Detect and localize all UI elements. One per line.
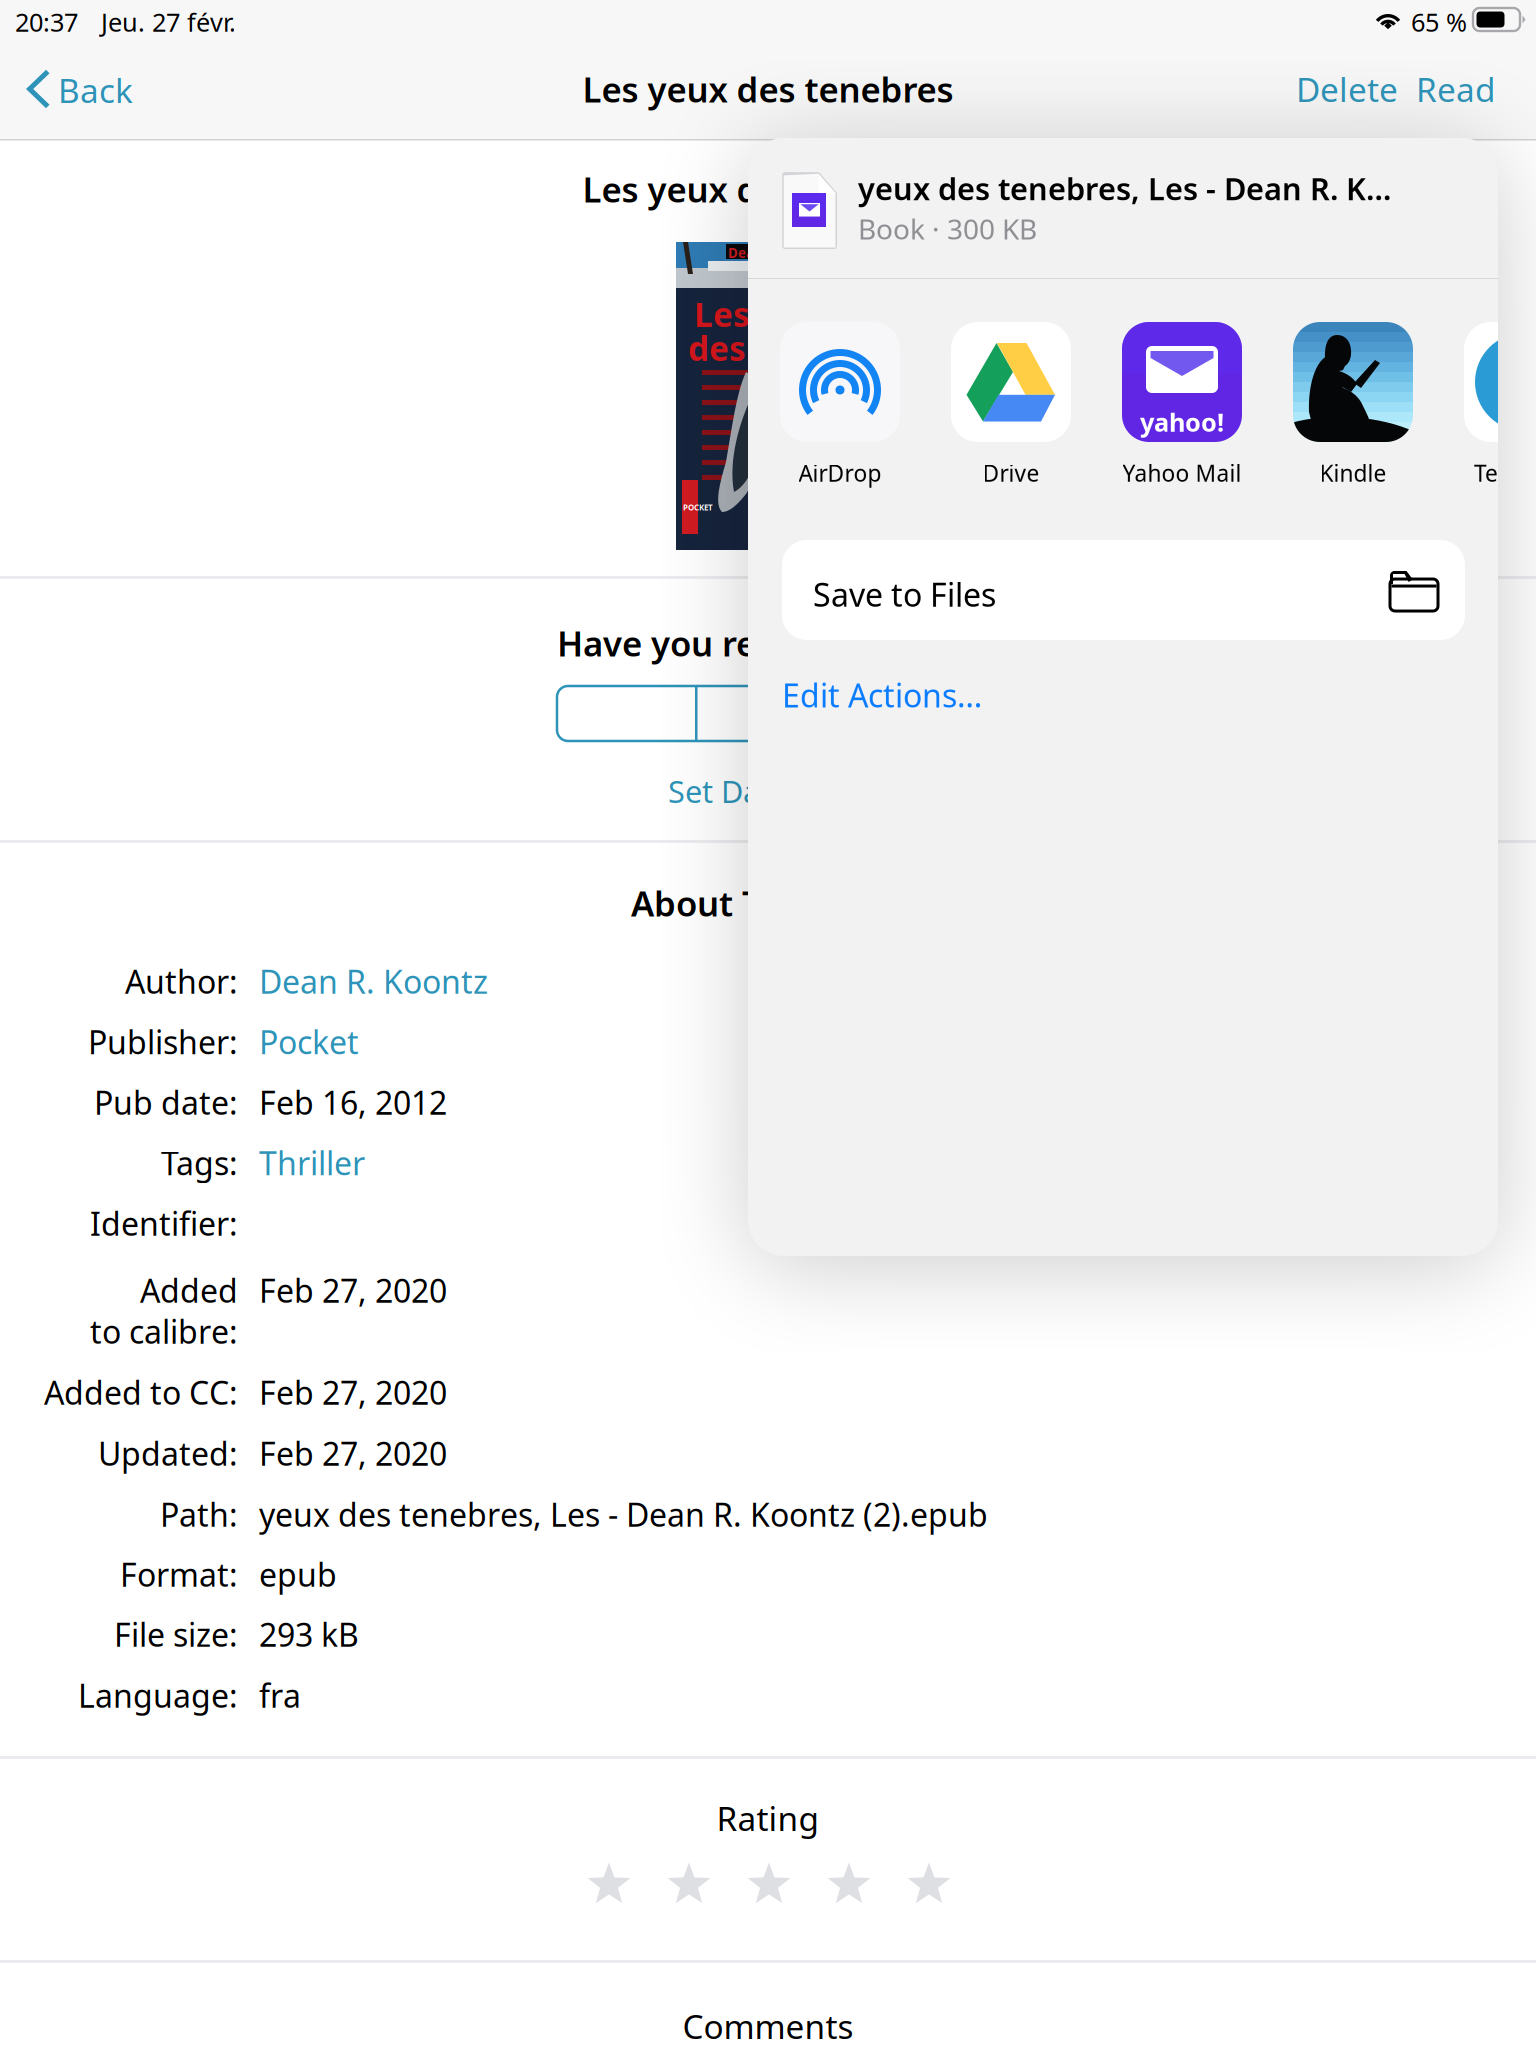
staticText: Updated:: [98, 1432, 238, 1474]
staticText: 65 %: [1411, 5, 1467, 39]
staticText: Comments: [682, 2004, 853, 2048]
staticText: Have you read this book?: [557, 620, 979, 666]
button[interactable]: Telegram: [1464, 322, 1536, 494]
button[interactable]: [557, 686, 695, 741]
button[interactable]: Save to Files: [782, 540, 1465, 640]
staticText: 20:37: [15, 5, 78, 39]
staticText: Path:: [160, 1493, 238, 1535]
staticText: Edit Actions…: [782, 674, 982, 716]
staticText: yeux des tenebres, Les - Dean R. K…: [858, 168, 1391, 209]
staticText: Tags:: [161, 1141, 238, 1184]
staticText: Identifier:: [90, 1202, 238, 1244]
staticText: to calibre:: [90, 1310, 238, 1352]
staticText: Feb 27, 2020: [259, 1371, 447, 1413]
staticText: Dean R. Koontz: [259, 960, 488, 1002]
staticText: File size:: [114, 1613, 238, 1655]
staticText: Set Date: [668, 771, 786, 811]
button[interactable]: Edit Actions…: [782, 672, 1042, 718]
button[interactable]: [697, 686, 835, 741]
staticText: Kindle: [1319, 458, 1386, 488]
button[interactable]: yahoo!: [1122, 322, 1242, 494]
staticText: Back: [58, 68, 133, 112]
staticText: Format:: [120, 1553, 238, 1595]
staticText: Delete: [1296, 67, 1398, 111]
staticText: Les yeux des tenebres: [582, 66, 953, 112]
staticText: 293 kB: [259, 1613, 359, 1655]
button[interactable]: AirDrop: [780, 322, 900, 494]
staticText: Book · 300 KB: [858, 210, 1037, 247]
staticText: Rating: [716, 1796, 819, 1840]
staticText: Les: [694, 292, 750, 336]
staticText: AirDrop: [798, 458, 881, 488]
staticText: des t: [688, 326, 769, 370]
staticText: Drive: [982, 458, 1039, 488]
staticText: Telegram: [1474, 458, 1536, 488]
button[interactable]: Read: [1414, 65, 1498, 113]
button[interactable]: Delete: [1294, 65, 1400, 113]
staticText: Author:: [125, 960, 238, 1002]
staticText: Les yeux des tenebres: [582, 166, 953, 212]
staticText: yeux des tenebres, Les - Dean R. Koontz …: [259, 1493, 988, 1535]
button[interactable]: Back: [0, 44, 150, 140]
staticText: Added to CC:: [44, 1371, 238, 1413]
staticText: Jeu. 27 févr.: [101, 5, 236, 39]
button[interactable]: Kindle: [1293, 322, 1413, 494]
staticText: fra: [259, 1674, 301, 1716]
staticText: Feb 27, 2020: [259, 1432, 447, 1474]
staticText: Publisher:: [88, 1020, 238, 1063]
staticText: Thriller: [259, 1141, 365, 1184]
staticText: yahoo!: [1140, 405, 1224, 439]
staticText: POCKET: [683, 502, 713, 513]
staticText: Feb 16, 2012: [259, 1081, 447, 1123]
staticText: About This Book: [631, 880, 905, 926]
staticText: Save to Files: [813, 573, 996, 615]
staticText: Dean: [728, 244, 763, 262]
staticText: epub: [259, 1553, 337, 1595]
staticText: Language:: [78, 1674, 238, 1716]
staticText: Pub date:: [94, 1081, 238, 1123]
staticText: Yahoo Mail: [1122, 458, 1241, 488]
staticText: Read: [1416, 67, 1496, 111]
button[interactable]: Drive: [951, 322, 1071, 494]
staticText: Added: [140, 1269, 238, 1311]
button[interactable]: Set Date: [668, 768, 786, 814]
staticText: Feb 27, 2020: [259, 1269, 447, 1311]
staticText: Pocket: [259, 1020, 359, 1063]
